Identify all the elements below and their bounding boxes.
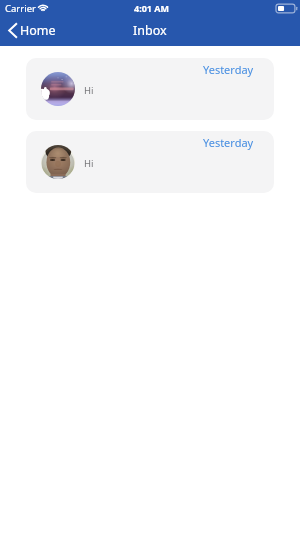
button[interactable]: Yesterday — [26, 58, 274, 120]
other: Battery — [276, 3, 297, 14]
staticText: Hi — [84, 84, 94, 97]
staticText: Inbox — [133, 22, 167, 39]
staticText: 4:01 AM — [134, 2, 170, 14]
button[interactable]: Yesterday — [26, 131, 274, 193]
staticText: Hi — [84, 157, 94, 170]
staticText: Home — [20, 22, 56, 39]
staticText: Yesterday — [203, 62, 254, 77]
staticText: Carrier — [5, 2, 36, 15]
staticText: Yesterday — [203, 135, 254, 150]
button[interactable]: Home — [0, 18, 66, 46]
other: Wi-Fi — [37, 2, 49, 11]
